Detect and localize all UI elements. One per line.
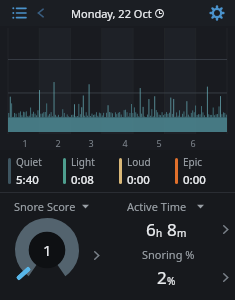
button[interactable]: Light xyxy=(61,150,117,192)
staticText: 0:00 xyxy=(127,172,150,188)
staticText: Snoring % xyxy=(142,247,195,262)
staticText: Monday, 22 Oct xyxy=(71,6,152,21)
staticText: 5 xyxy=(156,137,162,149)
button[interactable]: 6 xyxy=(117,217,235,241)
button[interactable]: Active Time xyxy=(127,199,204,214)
staticText: Loud xyxy=(127,155,151,169)
staticText: Quiet xyxy=(16,155,42,169)
staticText: 1 xyxy=(22,137,28,149)
button[interactable]: Quiet xyxy=(6,150,61,192)
staticText: 6 xyxy=(190,137,196,149)
staticText: m xyxy=(177,226,187,240)
staticText: h xyxy=(156,226,163,240)
staticText: 5:40 xyxy=(16,172,39,188)
staticText: 4 xyxy=(122,137,128,149)
staticText: 2 xyxy=(157,266,167,289)
staticText: % xyxy=(167,274,176,288)
staticText: 2 xyxy=(55,137,61,149)
button[interactable]: Epic xyxy=(173,150,229,192)
button[interactable]: 2 xyxy=(117,265,235,289)
button[interactable]: Monday, 22 Oct xyxy=(71,6,164,21)
staticText: 1 xyxy=(43,240,52,260)
staticText: 8 xyxy=(167,218,177,241)
button[interactable]: Snore score 1 xyxy=(14,217,80,283)
staticText: 0:00 xyxy=(183,172,206,188)
button[interactable]: Menu xyxy=(8,2,30,24)
button[interactable]: Snore Score xyxy=(14,199,89,214)
staticText: Snore Score xyxy=(14,199,76,214)
staticText: Active Time xyxy=(127,199,187,214)
staticText: 3 xyxy=(88,137,94,149)
button[interactable]: Open snore score xyxy=(86,245,106,265)
button[interactable]: Settings xyxy=(206,2,228,24)
button[interactable]: Previous day xyxy=(30,2,52,24)
staticText: 0:08 xyxy=(71,172,94,188)
staticText: 6 xyxy=(146,218,156,241)
button[interactable]: Loud xyxy=(117,150,173,192)
staticText: Epic xyxy=(183,155,203,169)
staticText: Light xyxy=(71,155,95,169)
